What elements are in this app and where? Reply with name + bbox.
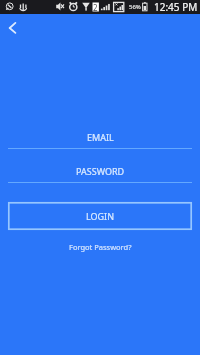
staticText: Forgot Password? <box>69 242 132 252</box>
button[interactable]: Back <box>0 14 26 40</box>
staticText: LOGIN <box>86 210 115 222</box>
staticText: 12:45 PM <box>154 0 198 14</box>
button[interactable]: LOGIN <box>8 202 192 230</box>
button[interactable]: Forgot Password? <box>69 242 132 252</box>
staticText: 2 <box>93 2 98 13</box>
staticText: 56% <box>129 3 141 11</box>
staticText: PASSWORD <box>76 165 125 177</box>
staticText: EMAIL <box>87 131 114 143</box>
